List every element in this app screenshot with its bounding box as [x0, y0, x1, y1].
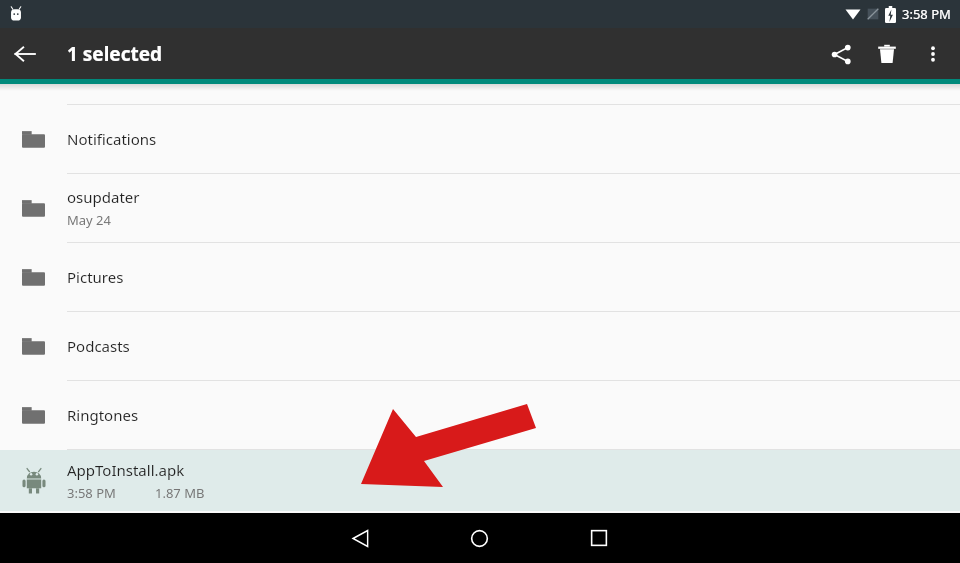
button[interactable]: Back [338, 516, 382, 560]
staticText: Pictures [67, 267, 124, 287]
staticText: May 24 [67, 211, 111, 229]
button[interactable]: Recent apps [577, 516, 621, 560]
button[interactable]: Delete [864, 31, 910, 77]
button[interactable]: Share [818, 31, 864, 77]
button[interactable]: Pictures [0, 243, 960, 311]
button[interactable]: osupdater [0, 174, 960, 242]
staticText: 3:58 PM [67, 484, 155, 502]
button[interactable]: AppToInstall.apk [0, 450, 960, 511]
staticText: 3:58 PM [902, 5, 951, 23]
button[interactable]: Notifications [0, 105, 960, 173]
staticText: Notifications [67, 129, 157, 149]
staticText: 1 selected [67, 41, 163, 67]
staticText: Ringtones [67, 405, 139, 425]
button[interactable]: Podcasts [0, 312, 960, 380]
button[interactable]: Back [5, 34, 45, 74]
button[interactable]: Home [457, 516, 501, 560]
staticText: 1.87 MB [155, 484, 205, 502]
staticText: osupdater [67, 187, 140, 207]
button[interactable]: Ringtones [0, 381, 960, 449]
staticText: Podcasts [67, 336, 130, 356]
staticText: AppToInstall.apk [67, 460, 185, 480]
button[interactable]: More options [910, 31, 956, 77]
